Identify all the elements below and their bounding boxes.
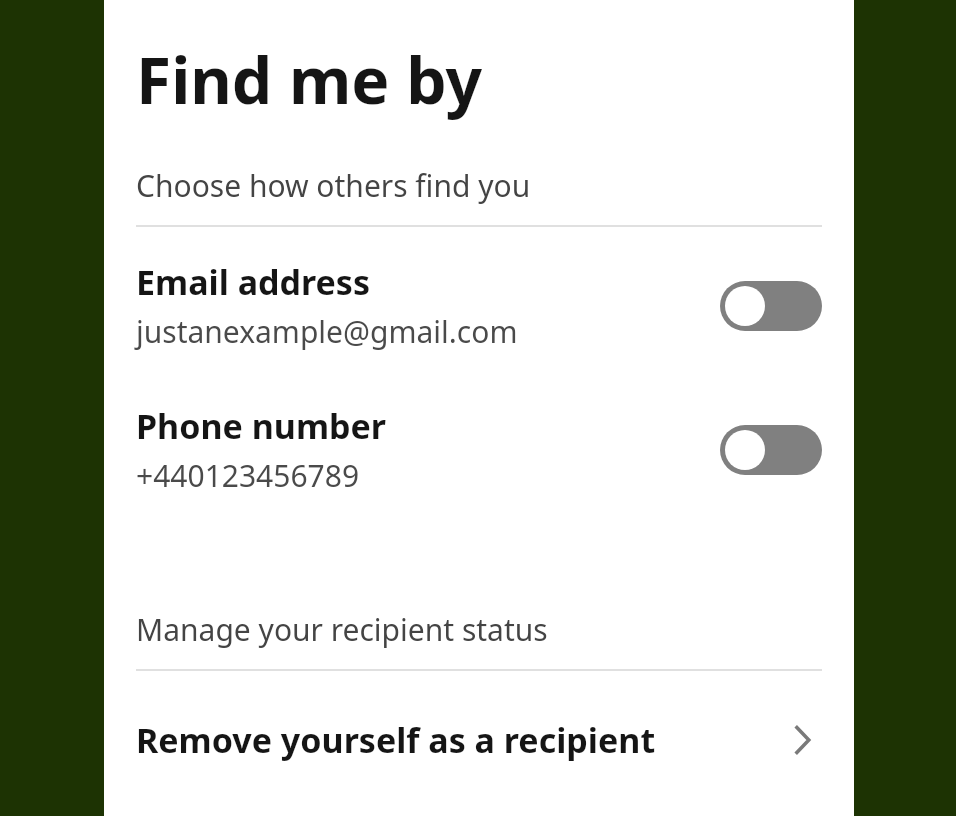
button[interactable]: Phone number: [104, 403, 854, 496]
staticText: Choose how others find you: [136, 165, 531, 206]
staticText: justanexample@gmail.com: [136, 311, 518, 352]
staticText: +440123456789: [136, 455, 360, 496]
button[interactable]: Find me by email address: [720, 281, 822, 331]
staticText: Find me by: [136, 36, 482, 123]
staticText: Phone number: [136, 403, 387, 449]
staticText: Email address: [136, 259, 370, 305]
button[interactable]: Email address: [104, 259, 854, 352]
other: Open: [782, 720, 822, 760]
staticText: Remove yourself as a recipient: [136, 717, 782, 763]
button[interactable]: Find me by phone number: [720, 425, 822, 475]
staticText: Manage your recipient status: [136, 609, 548, 650]
button[interactable]: Remove yourself as a recipient: [104, 671, 854, 787]
